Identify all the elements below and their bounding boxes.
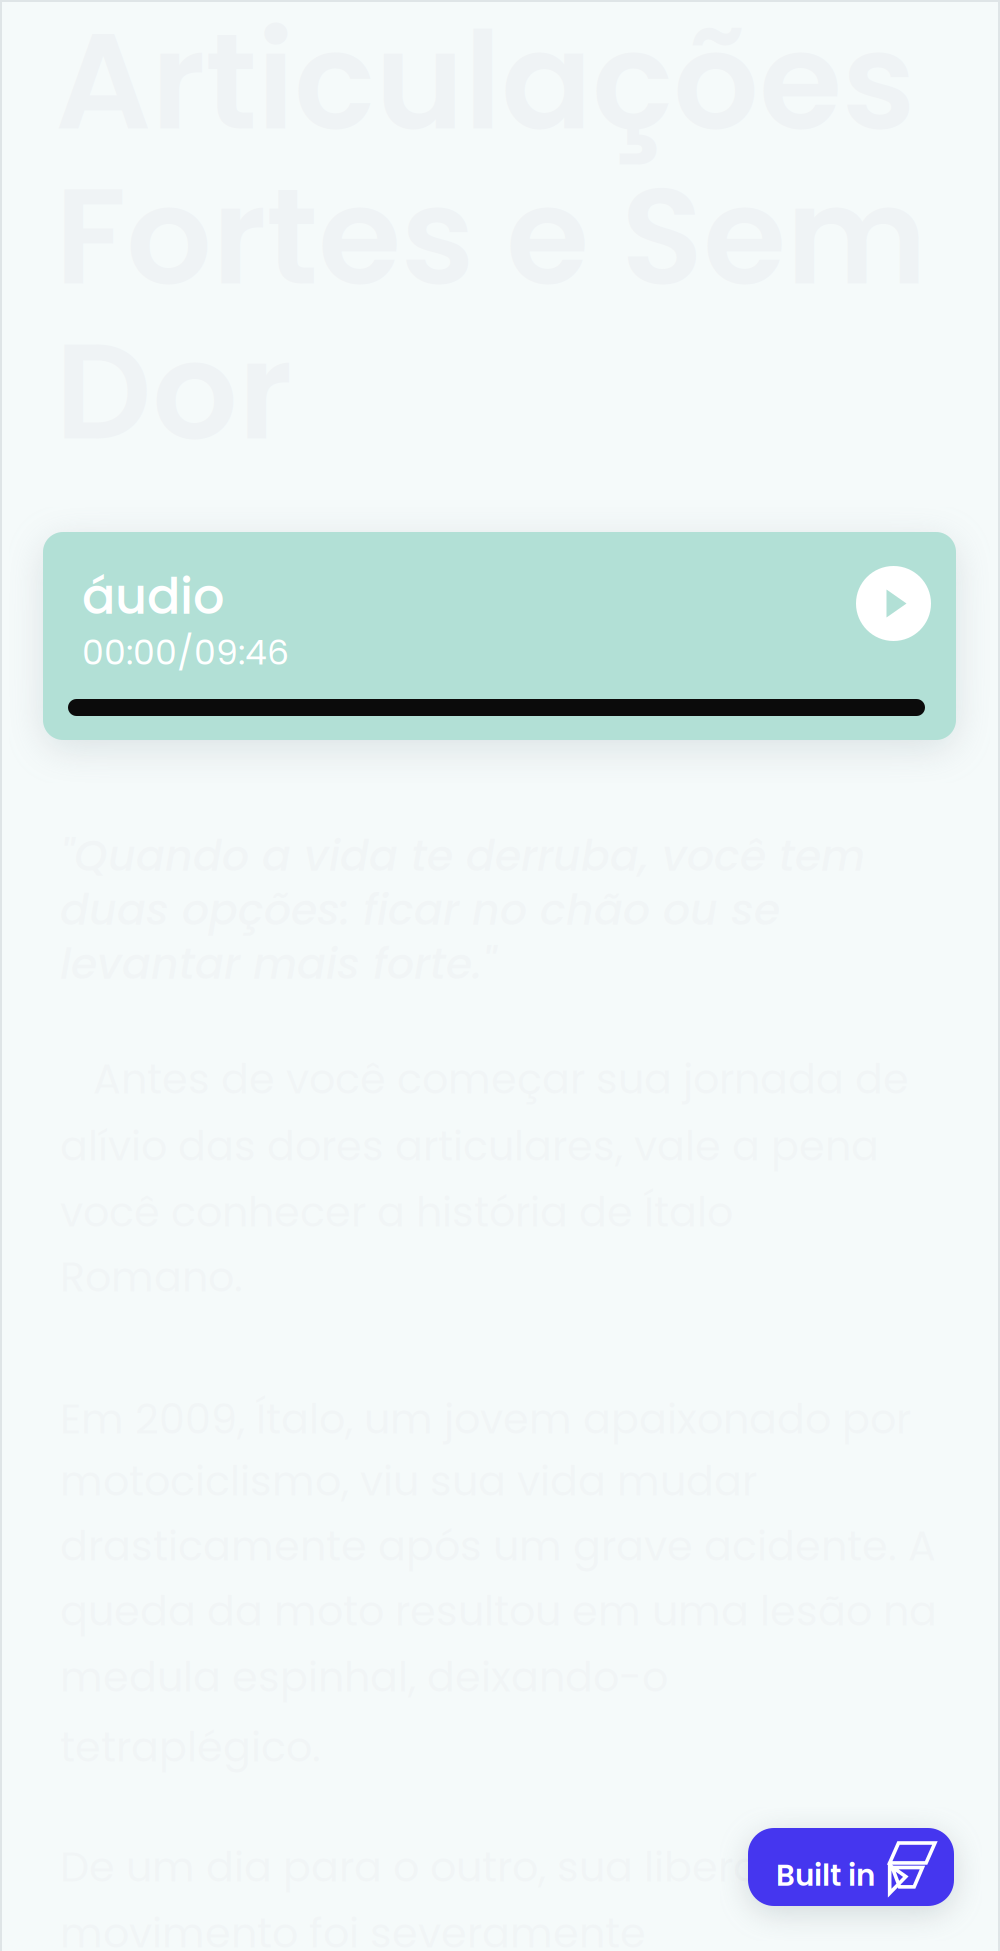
staticText: 00:00/09:46 bbox=[82, 628, 289, 676]
staticText: Built in bbox=[776, 1855, 875, 1896]
staticText: Articulações bbox=[55, 0, 915, 175]
button[interactable]: Built in bbox=[748, 1828, 954, 1906]
staticText: áudio bbox=[82, 562, 224, 631]
button[interactable]: áudio bbox=[43, 532, 956, 740]
staticText: De um dia para o outro, sua liberdade de bbox=[60, 1838, 908, 1896]
